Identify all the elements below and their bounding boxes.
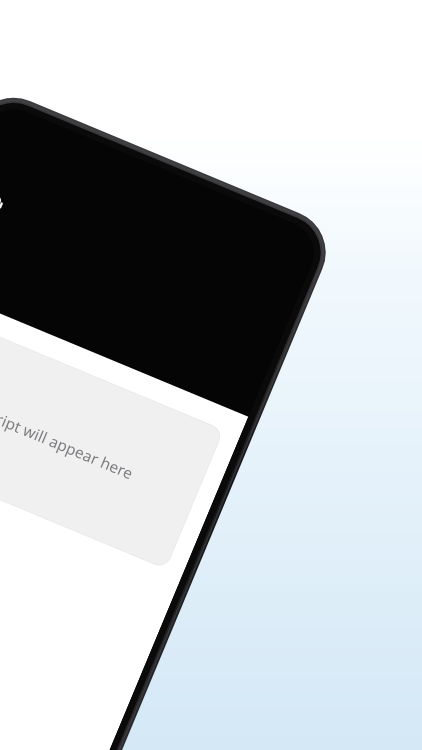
button[interactable]: Phone preview <box>0 0 422 750</box>
